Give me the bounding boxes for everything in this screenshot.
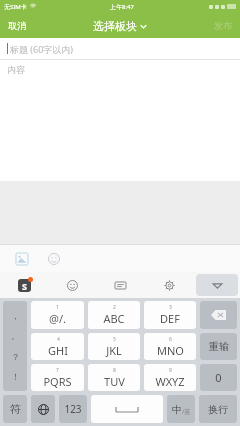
staticText: 123 xyxy=(64,402,82,416)
staticText: 5 xyxy=(113,336,116,343)
staticText: GHI xyxy=(48,343,68,358)
staticText: ？ xyxy=(11,351,20,362)
staticText: 。 xyxy=(11,330,20,341)
staticText: S xyxy=(22,280,27,292)
button[interactable]: 取消 xyxy=(0,13,34,38)
button[interactable]: 4 xyxy=(31,333,84,360)
button[interactable]: Sogou input method xyxy=(0,272,48,298)
staticText: 9 xyxy=(169,367,172,374)
staticText: 2 xyxy=(113,304,116,311)
button[interactable]: clip xyxy=(96,272,145,298)
button[interactable]: 1 xyxy=(31,301,84,329)
staticText: 8 xyxy=(113,367,116,374)
staticText: 发布 xyxy=(214,20,232,31)
button[interactable]: Switch language xyxy=(31,395,55,423)
staticText: 0 xyxy=(215,370,222,385)
staticText: ， xyxy=(11,310,20,321)
button[interactable]: 0 xyxy=(200,364,237,391)
staticText: 符 xyxy=(10,402,21,416)
staticText: @/. xyxy=(49,311,66,326)
button[interactable]: 123 xyxy=(59,395,87,423)
staticText: PQRS xyxy=(43,374,72,389)
button[interactable]: 换行 xyxy=(199,395,237,423)
staticText: 取消 xyxy=(8,20,26,31)
staticText: 3 xyxy=(169,304,172,311)
button[interactable]: 中 xyxy=(167,395,195,423)
staticText: 内容 xyxy=(7,64,25,75)
staticText: 7 xyxy=(56,367,59,374)
button[interactable]: Hide keyboard xyxy=(196,274,238,296)
button[interactable]: 重输 xyxy=(200,333,237,360)
staticText: 无SIM卡 xyxy=(4,3,27,11)
staticText: WXYZ xyxy=(155,374,185,389)
staticText: 中 xyxy=(172,403,182,416)
button[interactable] xyxy=(91,395,163,423)
button[interactable]: 9 xyxy=(144,364,196,391)
button[interactable]: 选择板块 xyxy=(89,15,151,37)
staticText: 6 xyxy=(169,336,172,343)
staticText: 上午8:47 xyxy=(110,3,134,11)
button[interactable]: 6 xyxy=(144,333,196,360)
staticText: MNO xyxy=(157,343,184,358)
button[interactable]: 符 xyxy=(3,395,27,423)
button[interactable]: Insert emoji xyxy=(44,249,64,269)
button[interactable]: gear xyxy=(145,272,194,298)
staticText: DEF xyxy=(160,311,180,326)
staticText: ABC xyxy=(103,311,125,326)
staticText: 4 xyxy=(57,336,60,343)
staticText: /英 xyxy=(182,408,191,416)
button[interactable] xyxy=(200,301,237,329)
button[interactable]: 5 xyxy=(88,333,140,360)
staticText: ！ xyxy=(11,371,20,382)
staticText: TUV xyxy=(104,374,125,389)
button[interactable]: 2 xyxy=(88,301,140,329)
staticText: 选择板块 xyxy=(93,19,137,33)
button[interactable]: ， xyxy=(3,301,27,391)
staticText: 1 xyxy=(56,304,59,311)
staticText: 换行 xyxy=(208,403,228,416)
button[interactable]: 发布 xyxy=(206,13,240,38)
staticText: 标题 (60字以内) xyxy=(10,43,74,55)
button[interactable]: Insert image xyxy=(12,249,32,269)
staticText: JKL xyxy=(106,343,122,358)
button[interactable]: 8 xyxy=(88,364,140,391)
button[interactable]: emoji xyxy=(48,272,96,298)
staticText: 重输 xyxy=(209,340,229,353)
button[interactable]: 7 xyxy=(31,364,84,391)
button[interactable]: 3 xyxy=(144,301,196,329)
